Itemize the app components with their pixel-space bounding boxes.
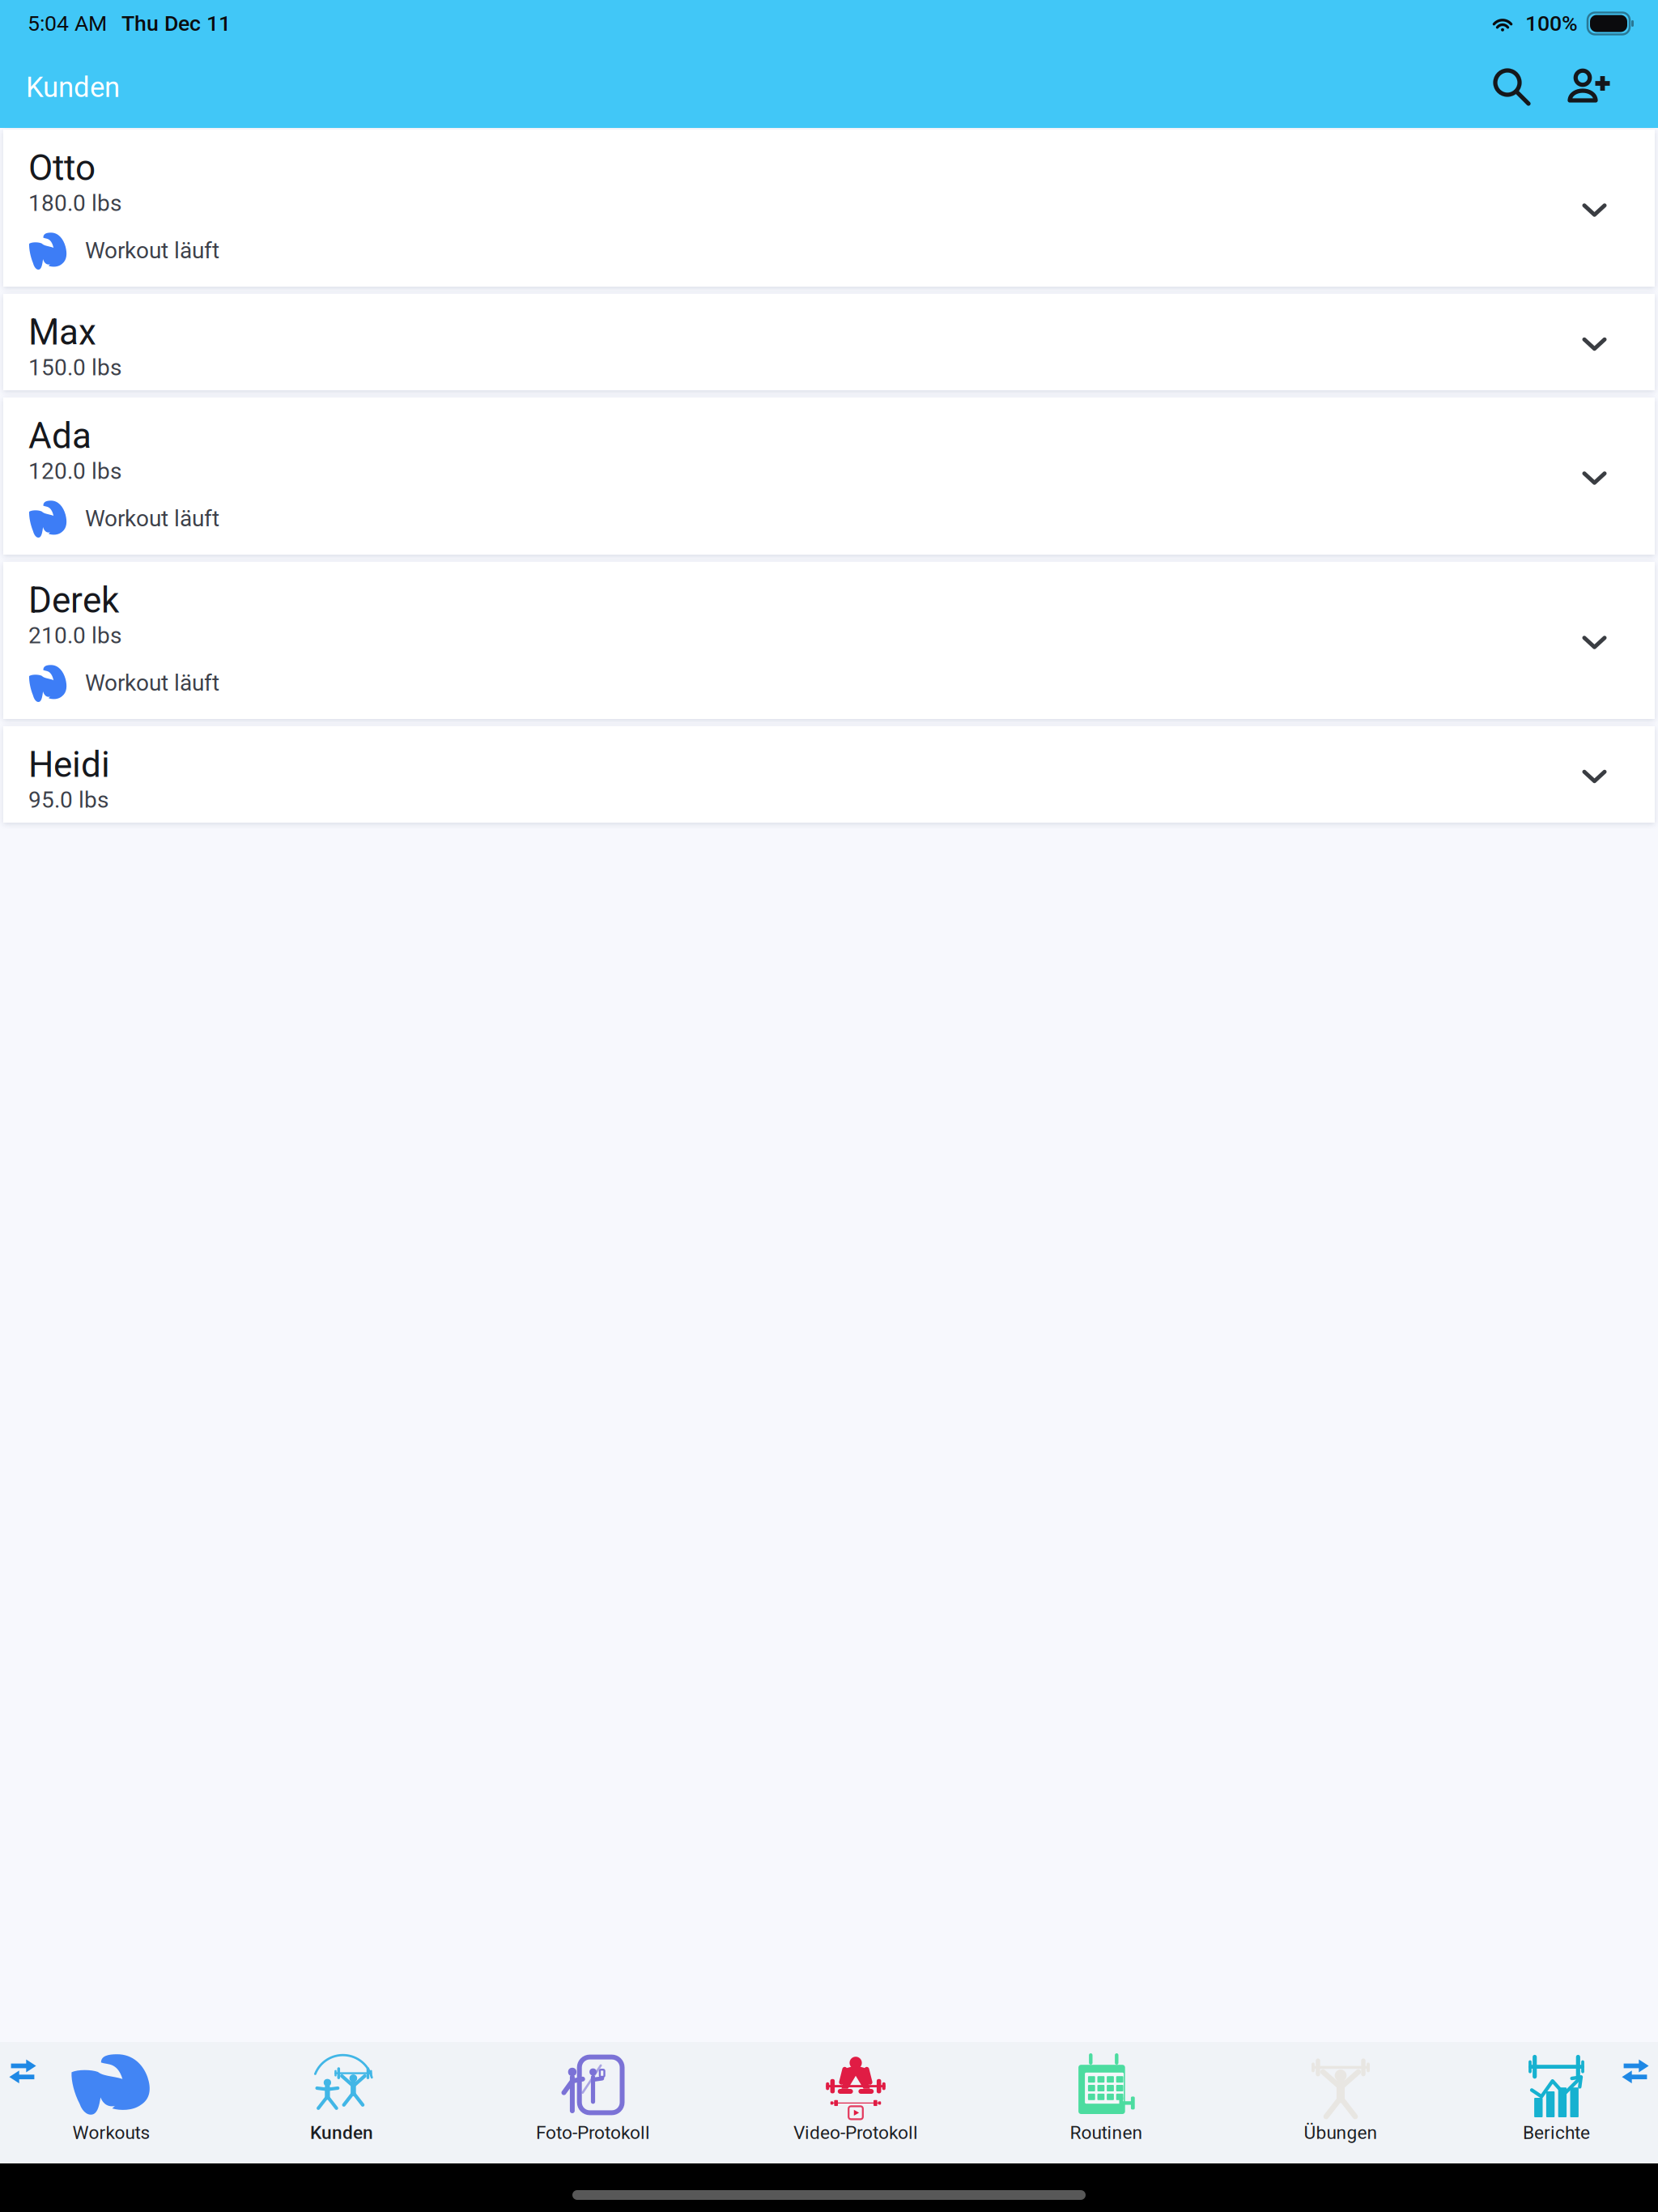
staticText: Video-Protokoll: [793, 2122, 918, 2143]
button[interactable]: Heidi: [3, 726, 1655, 823]
button[interactable]: Search: [1477, 53, 1546, 122]
button[interactable]: Add client: [1553, 53, 1622, 122]
staticText: Workouts: [72, 2122, 150, 2143]
staticText: Thu Dec 11: [121, 11, 231, 36]
button[interactable]: Max: [3, 294, 1655, 390]
staticText: Foto-Protokoll: [536, 2122, 650, 2143]
button[interactable]: Berichte: [1456, 2047, 1657, 2159]
staticText: 5:04 AM: [28, 11, 107, 36]
staticText: Kunden: [26, 71, 120, 104]
staticText: Kunden: [310, 2122, 373, 2143]
staticText: 210.0 lbs: [28, 622, 121, 649]
staticText: Max: [28, 311, 96, 353]
button[interactable]: Otto: [3, 130, 1655, 287]
button[interactable]: Ada: [3, 398, 1655, 555]
button[interactable]: Video-Protokoll: [724, 2047, 987, 2159]
button[interactable]: Kunden: [221, 2047, 462, 2159]
button[interactable]: Workouts: [1, 2047, 221, 2159]
staticText: Berichte: [1523, 2122, 1590, 2143]
staticText: Routinen: [1070, 2122, 1143, 2143]
staticText: Workout läuft: [85, 237, 219, 264]
button[interactable]: Foto-Protokoll: [462, 2047, 724, 2159]
button[interactable]: Routinen: [987, 2047, 1225, 2159]
staticText: Workout läuft: [85, 670, 219, 696]
staticText: 180.0 lbs: [28, 190, 121, 217]
button[interactable]: Übungen: [1225, 2047, 1456, 2159]
staticText: 95.0 lbs: [28, 787, 108, 813]
staticText: Heidi: [28, 744, 110, 786]
staticText: 150.0 lbs: [28, 354, 121, 381]
staticText: Übungen: [1304, 2122, 1377, 2143]
staticText: Workout läuft: [85, 505, 219, 532]
staticText: Otto: [28, 147, 96, 189]
staticText: Derek: [28, 579, 119, 621]
staticText: 120.0 lbs: [28, 458, 121, 485]
staticText: Ada: [28, 415, 91, 457]
button[interactable]: Derek: [3, 562, 1655, 719]
staticText: 100%: [1525, 11, 1578, 36]
